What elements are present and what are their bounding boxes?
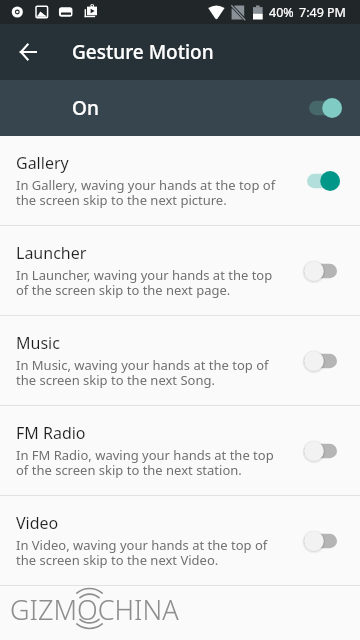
staticText: On xyxy=(72,95,99,121)
button[interactable]: FM Radio gesture toggle xyxy=(304,440,340,462)
button[interactable]: Launcher gesture toggle xyxy=(304,260,340,282)
staticText: 7:49 PM xyxy=(299,4,346,21)
staticText: In Music, waving your hands at the top o… xyxy=(16,356,269,389)
button[interactable]: Gallery xyxy=(0,136,360,225)
button[interactable]: Music gesture toggle xyxy=(304,350,340,372)
button[interactable]: FM Radio xyxy=(0,406,360,495)
staticText: Music xyxy=(16,332,60,354)
staticText: In Video, waving your hands at the top o… xyxy=(16,536,268,569)
staticText: GIZMOCHINA xyxy=(10,591,179,628)
staticText: Gesture Motion xyxy=(72,39,214,65)
button[interactable]: On xyxy=(0,80,360,136)
staticText: In Gallery, waving your hands at the top… xyxy=(16,176,276,209)
button[interactable]: Video gesture toggle xyxy=(304,530,340,552)
staticText: In Launcher, waving your hands at the to… xyxy=(16,266,273,299)
staticText: Video xyxy=(16,512,59,534)
button[interactable]: Gallery gesture toggle xyxy=(304,170,340,192)
staticText: FM Radio xyxy=(16,422,86,444)
button[interactable]: Video xyxy=(0,496,360,585)
button[interactable]: Back xyxy=(0,24,56,80)
staticText: In FM Radio, waving your hands at the to… xyxy=(16,446,274,479)
staticText: Gallery xyxy=(16,152,69,174)
staticText: Launcher xyxy=(16,242,87,264)
button[interactable]: Launcher xyxy=(0,226,360,315)
staticText: 40% xyxy=(269,4,294,21)
button[interactable]: Gesture motion on xyxy=(306,97,342,119)
button[interactable]: Music xyxy=(0,316,360,405)
